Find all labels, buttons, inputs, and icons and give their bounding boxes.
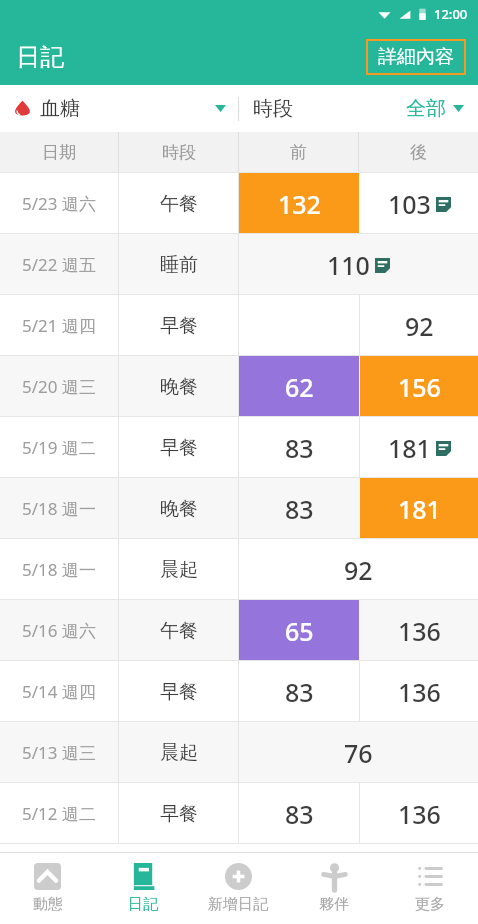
- button[interactable]: 動態: [0, 853, 95, 924]
- staticText: 5/18 週一: [22, 558, 96, 581]
- staticText: 前: [290, 142, 307, 163]
- staticText: 5/16 週六: [22, 619, 96, 642]
- staticText: 午餐: [160, 192, 198, 216]
- staticText: 136: [398, 675, 441, 709]
- staticText: 晨起: [160, 741, 198, 765]
- staticText: 5/12 週二: [22, 802, 96, 825]
- staticText: 181: [388, 431, 431, 465]
- staticText: 156: [398, 370, 441, 404]
- staticText: 83: [285, 431, 314, 465]
- button[interactable]: 血糖: [0, 85, 238, 132]
- staticText: 5/21 週四: [22, 314, 96, 337]
- staticText: 83: [285, 492, 314, 526]
- staticText: 92: [405, 309, 434, 343]
- button[interactable]: 5/18 週一: [0, 539, 478, 600]
- staticText: 晨起: [160, 558, 198, 582]
- staticText: 92: [344, 553, 373, 587]
- staticText: 110: [327, 248, 370, 282]
- staticText: 132: [278, 187, 321, 221]
- button[interactable]: 5/21 週四: [0, 295, 478, 356]
- staticText: 103: [388, 187, 431, 221]
- staticText: 136: [398, 614, 441, 648]
- staticText: 5/22 週五: [22, 253, 96, 276]
- staticText: 5/14 週四: [22, 680, 96, 703]
- button[interactable]: 夥伴: [286, 853, 382, 924]
- staticText: 詳細內容: [378, 45, 454, 69]
- button[interactable]: 5/14 週四: [0, 661, 478, 722]
- staticText: 65: [285, 614, 314, 648]
- button[interactable]: 5/16 週六: [0, 600, 478, 661]
- button[interactable]: 時段: [239, 85, 478, 132]
- staticText: 136: [398, 797, 441, 831]
- staticText: 早餐: [160, 680, 198, 704]
- staticText: 早餐: [160, 314, 198, 338]
- staticText: 181: [398, 492, 441, 526]
- button[interactable]: 5/20 週三: [0, 356, 478, 417]
- button[interactable]: 日記: [95, 853, 190, 924]
- staticText: 晚餐: [160, 375, 198, 399]
- staticText: 夥伴: [319, 895, 349, 914]
- staticText: 日記: [128, 895, 158, 914]
- staticText: 76: [344, 736, 373, 770]
- button[interactable]: 5/19 週二: [0, 417, 478, 478]
- staticText: 5/19 週二: [22, 436, 96, 459]
- staticText: 83: [285, 797, 314, 831]
- staticText: 5/13 週三: [22, 741, 96, 764]
- button[interactable]: 更多: [382, 853, 478, 924]
- staticText: 動態: [33, 895, 63, 914]
- staticText: 12:00: [434, 5, 468, 23]
- staticText: 晚餐: [160, 497, 198, 521]
- staticText: 5/20 週三: [22, 375, 96, 398]
- staticText: 後: [410, 142, 427, 163]
- staticText: 睡前: [160, 253, 198, 277]
- staticText: 新增日記: [208, 895, 268, 914]
- button[interactable]: 5/18 週一: [0, 478, 478, 539]
- staticText: 血糖: [40, 96, 80, 121]
- button[interactable]: 新增日記: [190, 853, 286, 924]
- staticText: 日記: [16, 42, 64, 72]
- button[interactable]: 5/22 週五: [0, 234, 478, 295]
- staticText: 午餐: [160, 619, 198, 643]
- staticText: 早餐: [160, 802, 198, 826]
- staticText: 62: [285, 370, 314, 404]
- button[interactable]: 5/12 週二: [0, 783, 478, 844]
- staticText: 全部: [406, 96, 446, 121]
- staticText: 時段: [253, 96, 293, 121]
- button[interactable]: 5/13 週三: [0, 722, 478, 783]
- staticText: 83: [285, 675, 314, 709]
- staticText: 更多: [415, 895, 445, 914]
- staticText: 5/18 週一: [22, 497, 96, 520]
- staticText: 早餐: [160, 436, 198, 460]
- staticText: 5/23 週六: [22, 192, 96, 215]
- button[interactable]: 詳細內容: [366, 39, 466, 75]
- button[interactable]: 5/23 週六: [0, 173, 478, 234]
- staticText: 時段: [162, 142, 196, 163]
- staticText: 日期: [42, 142, 76, 163]
